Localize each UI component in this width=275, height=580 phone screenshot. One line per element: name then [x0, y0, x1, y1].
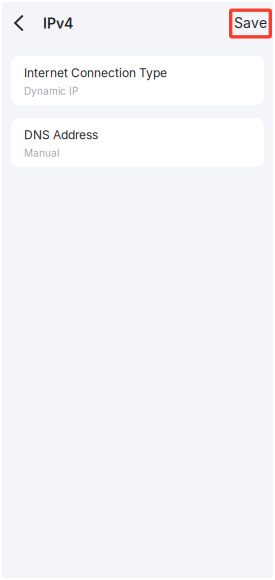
staticText: IPv4 [43, 15, 73, 32]
staticText: DNS Address [24, 127, 98, 142]
staticText: Save [234, 14, 267, 31]
button[interactable]: Back [2, 4, 34, 42]
staticText: Internet Connection Type [24, 65, 167, 80]
staticText: Dynamic IP [24, 85, 78, 97]
button[interactable]: Save [229, 7, 272, 38]
button[interactable]: DNS Address [11, 118, 264, 167]
staticText: Manual [24, 147, 59, 159]
button[interactable]: Internet Connection Type [11, 56, 264, 105]
